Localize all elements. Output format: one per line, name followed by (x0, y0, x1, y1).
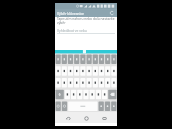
button[interactable]: Key j (93, 76, 99, 88)
button[interactable]: Key d (69, 76, 75, 88)
staticText: Výběr klávesnice (57, 11, 85, 16)
button[interactable]: Language (62, 100, 69, 112)
button[interactable]: Key f (75, 76, 81, 88)
button[interactable]: Key m (102, 88, 108, 100)
button[interactable]: Recents (99, 113, 109, 123)
button[interactable]: Key 6 (87, 53, 93, 64)
button[interactable]: Key 4 (75, 53, 81, 64)
button[interactable]: Key 5 (81, 53, 87, 64)
button[interactable]: Key y (65, 88, 72, 100)
button[interactable]: Key 9 (105, 53, 111, 64)
staticText: Tapnutím nahoru nebo dolů nastavíte výbě… (57, 17, 116, 25)
button[interactable]: Key ě (111, 76, 117, 88)
button[interactable]: Key i (99, 64, 105, 76)
button[interactable]: Key w (62, 64, 69, 76)
button[interactable]: Key c (78, 88, 84, 100)
button[interactable]: Home (81, 113, 91, 123)
button[interactable]: Key 7 (93, 53, 99, 64)
button[interactable]: Comma (105, 100, 111, 112)
button[interactable]: Key 1 (55, 53, 62, 64)
button[interactable]: Key h (87, 76, 93, 88)
button[interactable]: Symbols (55, 100, 62, 112)
button[interactable]: Period (99, 100, 105, 112)
button[interactable]: Výběr klávesnice (55, 9, 117, 17)
button[interactable]: Key g (81, 76, 87, 88)
button[interactable]: Key t (81, 64, 87, 76)
button[interactable]: Backspace (108, 88, 117, 100)
button[interactable]: Key z (87, 64, 93, 76)
button[interactable]: Refresh (108, 9, 116, 17)
button[interactable]: Vyhledávat ve vebu (57, 28, 115, 34)
button[interactable]: Key q (55, 64, 62, 76)
button[interactable]: Key v (84, 88, 90, 100)
button[interactable]: Key l (105, 76, 111, 88)
button[interactable]: Key e (69, 64, 75, 76)
button[interactable]: Space (69, 100, 99, 112)
button[interactable]: Key a (55, 76, 62, 88)
button[interactable]: Key u (93, 64, 99, 76)
button[interactable]: Key o (105, 64, 111, 76)
button[interactable]: Key k (99, 76, 105, 88)
button[interactable]: Back (63, 113, 73, 123)
button[interactable]: Key s (62, 76, 69, 88)
button[interactable]: Key p (111, 64, 117, 76)
button[interactable]: Key b (90, 88, 96, 100)
button[interactable]: Key r (75, 64, 81, 76)
staticText: Vyhledávat ve vebu (57, 28, 87, 32)
button[interactable]: Key n (96, 88, 102, 100)
button[interactable]: Key 8 (99, 53, 105, 64)
button[interactable]: Key 3 (69, 53, 75, 64)
button[interactable]: Key x (72, 88, 78, 100)
button[interactable]: Enter (111, 100, 117, 112)
button[interactable]: Key 2 (62, 53, 69, 64)
button[interactable]: Shift (55, 88, 65, 100)
button[interactable]: Key 0 (111, 53, 117, 64)
